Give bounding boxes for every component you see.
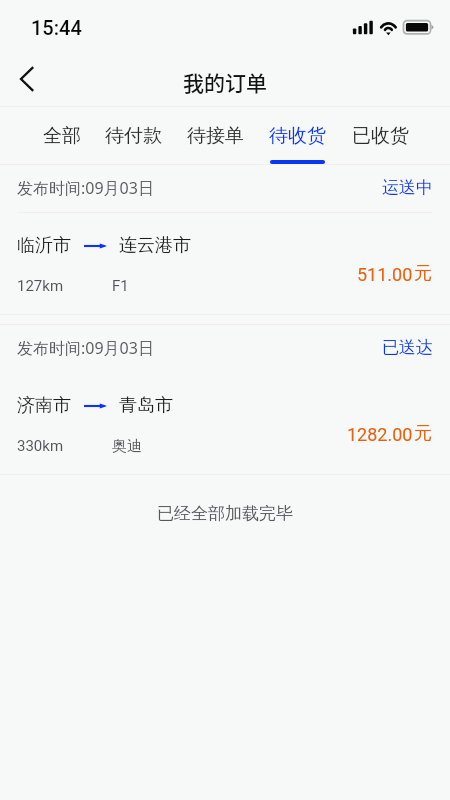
button[interactable]: 待接单 [186, 106, 244, 164]
button[interactable]: 发布时间:09月03日 [0, 165, 450, 314]
button[interactable]: Back [3, 55, 51, 103]
staticText: 临沂市 [17, 234, 71, 257]
staticText: 发布时间:09月03日 [17, 337, 154, 359]
staticText: F1 [112, 277, 129, 295]
staticText: 我的订单 [183, 67, 267, 97]
staticText: 奥迪 [112, 437, 142, 456]
staticText: 青岛市 [119, 394, 173, 417]
staticText: 已送达 [382, 337, 433, 358]
staticText: 待付款 [105, 124, 162, 148]
staticText: 元 [414, 262, 432, 285]
staticText: 15:44 [31, 16, 82, 39]
button[interactable]: 发布时间:09月03日 [0, 325, 450, 474]
button[interactable]: 已收货 [351, 106, 409, 164]
staticText: 已经全部加载完毕 [0, 503, 450, 524]
staticText: 待收货 [269, 124, 326, 148]
staticText: 127km [17, 277, 64, 295]
staticText: 1282.00 [347, 424, 413, 445]
button[interactable]: 待付款 [104, 106, 162, 164]
staticText: 发布时间:09月03日 [17, 177, 154, 199]
staticText: 已收货 [352, 124, 409, 148]
staticText: 济南市 [17, 394, 71, 417]
button[interactable]: 全部 [42, 106, 82, 164]
staticText: 待接单 [187, 124, 244, 148]
staticText: 511.00 [357, 264, 413, 285]
staticText: 元 [414, 422, 432, 445]
staticText: 330km [17, 437, 64, 455]
staticText: 全部 [43, 124, 81, 148]
staticText: 连云港市 [119, 234, 191, 257]
staticText: 运送中 [382, 177, 433, 198]
button[interactable]: 待收货 [268, 106, 326, 164]
